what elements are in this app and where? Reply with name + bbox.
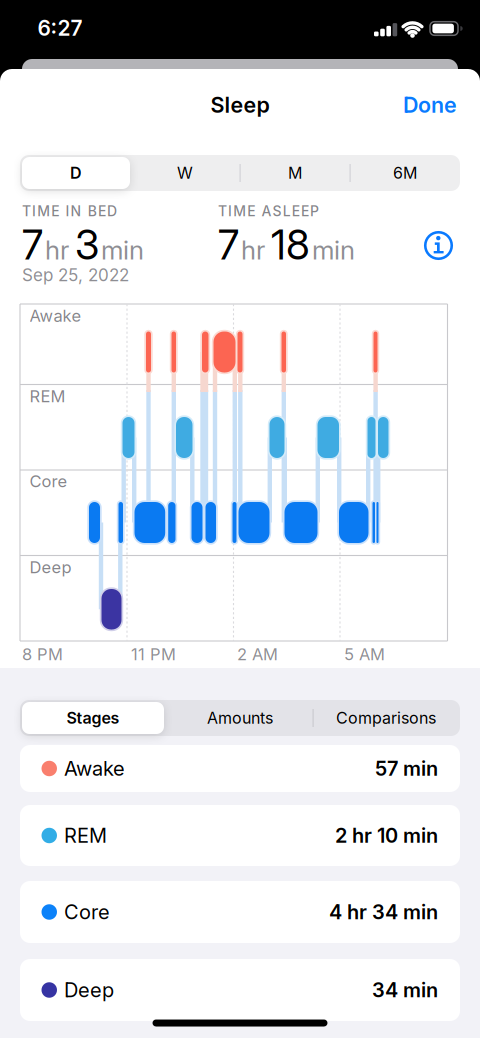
staticText: hr <box>241 235 265 265</box>
staticText: 2 hr 10 min <box>335 824 438 847</box>
staticText: 5 AM <box>344 644 385 664</box>
button[interactable]: Amounts <box>168 702 312 734</box>
staticText: 18 <box>271 221 310 269</box>
staticText: Stages <box>66 709 119 727</box>
staticText: 6:27 <box>37 16 82 40</box>
staticText: Awake <box>64 757 125 780</box>
staticText: hr <box>45 235 69 265</box>
staticText: W <box>177 164 193 182</box>
staticText: min <box>312 235 355 265</box>
staticText: TIME IN BED <box>22 203 117 219</box>
staticText: Comparisons <box>336 709 436 727</box>
staticText: Awake <box>29 306 81 325</box>
staticText: TIME ASLEEP <box>218 203 319 219</box>
staticText: Core <box>29 471 67 491</box>
staticText: 57 min <box>375 757 438 780</box>
staticText: 8 PM <box>22 644 63 664</box>
staticText: 6M <box>393 164 417 182</box>
staticText: 11 PM <box>131 644 176 664</box>
button[interactable]: Stages <box>22 702 164 734</box>
staticText: D <box>70 164 82 182</box>
staticText: Sep 25, 2022 <box>22 265 129 285</box>
staticText: REM <box>64 824 107 847</box>
staticText: 4 hr 34 min <box>329 900 438 924</box>
staticText: Amounts <box>207 709 273 727</box>
staticText: 7 <box>218 221 239 269</box>
staticText: 3 <box>75 221 99 269</box>
staticText: Core <box>64 900 110 924</box>
button[interactable]: 6M <box>351 157 459 189</box>
button[interactable]: W <box>131 157 239 189</box>
button[interactable]: More information <box>423 230 453 260</box>
staticText: Deep <box>64 978 114 1002</box>
button[interactable]: Comparisons <box>314 702 458 734</box>
staticText: Deep <box>29 557 71 577</box>
staticText: 2 AM <box>237 644 278 664</box>
staticText: 34 min <box>372 978 438 1002</box>
staticText: Done <box>403 92 457 118</box>
button[interactable]: D <box>22 157 130 189</box>
staticText: min <box>101 235 144 265</box>
staticText: REM <box>29 386 65 406</box>
button[interactable]: Done <box>403 92 457 118</box>
staticText: Sleep <box>210 92 269 118</box>
button[interactable]: M <box>241 157 349 189</box>
staticText: 7 <box>22 221 43 269</box>
staticText: M <box>288 164 302 182</box>
